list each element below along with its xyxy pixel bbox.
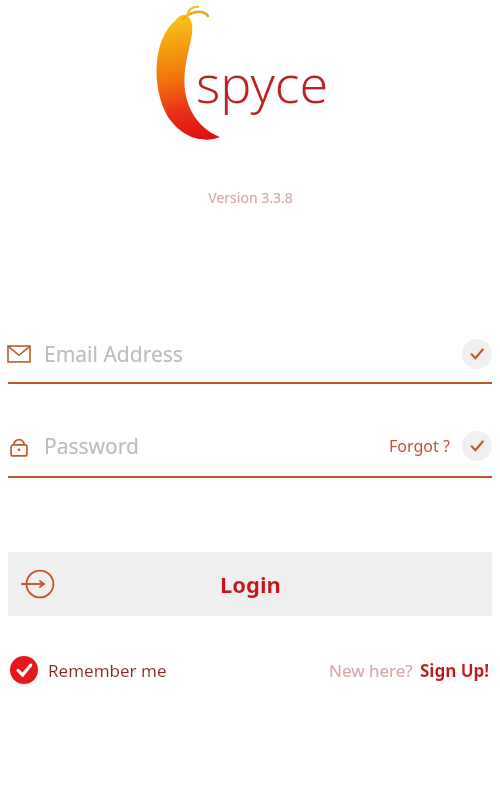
button[interactable]: Remember me — [10, 656, 167, 684]
button[interactable]: Valid — [462, 339, 492, 369]
button[interactable]: Password — [8, 422, 492, 470]
button[interactable]: Login — [8, 552, 492, 616]
staticText: Email Address — [44, 340, 183, 369]
button[interactable]: Valid — [462, 431, 492, 461]
button[interactable]: Email Address — [8, 330, 492, 378]
staticText: Forgot ? — [389, 435, 450, 457]
staticText: Remember me — [48, 659, 167, 682]
button[interactable]: Forgot ? — [387, 435, 452, 457]
staticText: Login — [220, 569, 281, 599]
staticText: spyce — [196, 47, 329, 118]
staticText: Sign Up! — [420, 659, 490, 682]
button[interactable]: New here? — [329, 659, 490, 682]
staticText: Password — [44, 432, 139, 461]
staticText: Version 3.3.8 — [208, 188, 293, 207]
staticText: New here? — [329, 659, 413, 682]
